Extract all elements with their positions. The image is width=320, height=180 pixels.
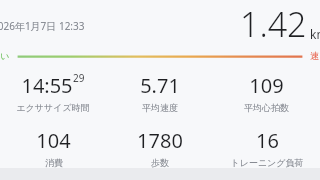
button[interactable]: 16: [228, 127, 306, 168]
staticText: km: [310, 26, 320, 42]
staticText: 1780: [137, 127, 183, 154]
staticText: 平均心拍数: [244, 102, 289, 113]
staticText: 16: [256, 127, 279, 154]
staticText: 104: [36, 127, 71, 154]
button[interactable]: Speed range: [0, 48, 320, 62]
button[interactable]: 1780: [135, 127, 185, 168]
staticText: 14:55: [21, 72, 73, 99]
button[interactable]: 14:55: [14, 72, 92, 113]
staticText: 1.42: [240, 1, 307, 47]
staticText: 速い: [310, 50, 320, 61]
staticText: 29: [73, 71, 85, 85]
staticText: 歩数: [151, 157, 169, 168]
button[interactable]: 109: [242, 72, 291, 113]
staticText: 遅い: [0, 50, 10, 61]
button[interactable]: 2026年1月7日 12:33: [0, 0, 320, 48]
staticText: 109: [249, 72, 284, 99]
button[interactable]: 104: [34, 127, 73, 168]
staticText: 5.71: [140, 72, 180, 99]
staticText: 2026年1月7日 12:33: [0, 19, 85, 33]
staticText: 消費: [45, 157, 63, 168]
button[interactable]: 5.71: [138, 72, 182, 113]
staticText: トレーニング負荷: [230, 157, 304, 168]
staticText: エクササイズ時間: [16, 102, 90, 113]
staticText: 平均速度: [142, 102, 178, 113]
